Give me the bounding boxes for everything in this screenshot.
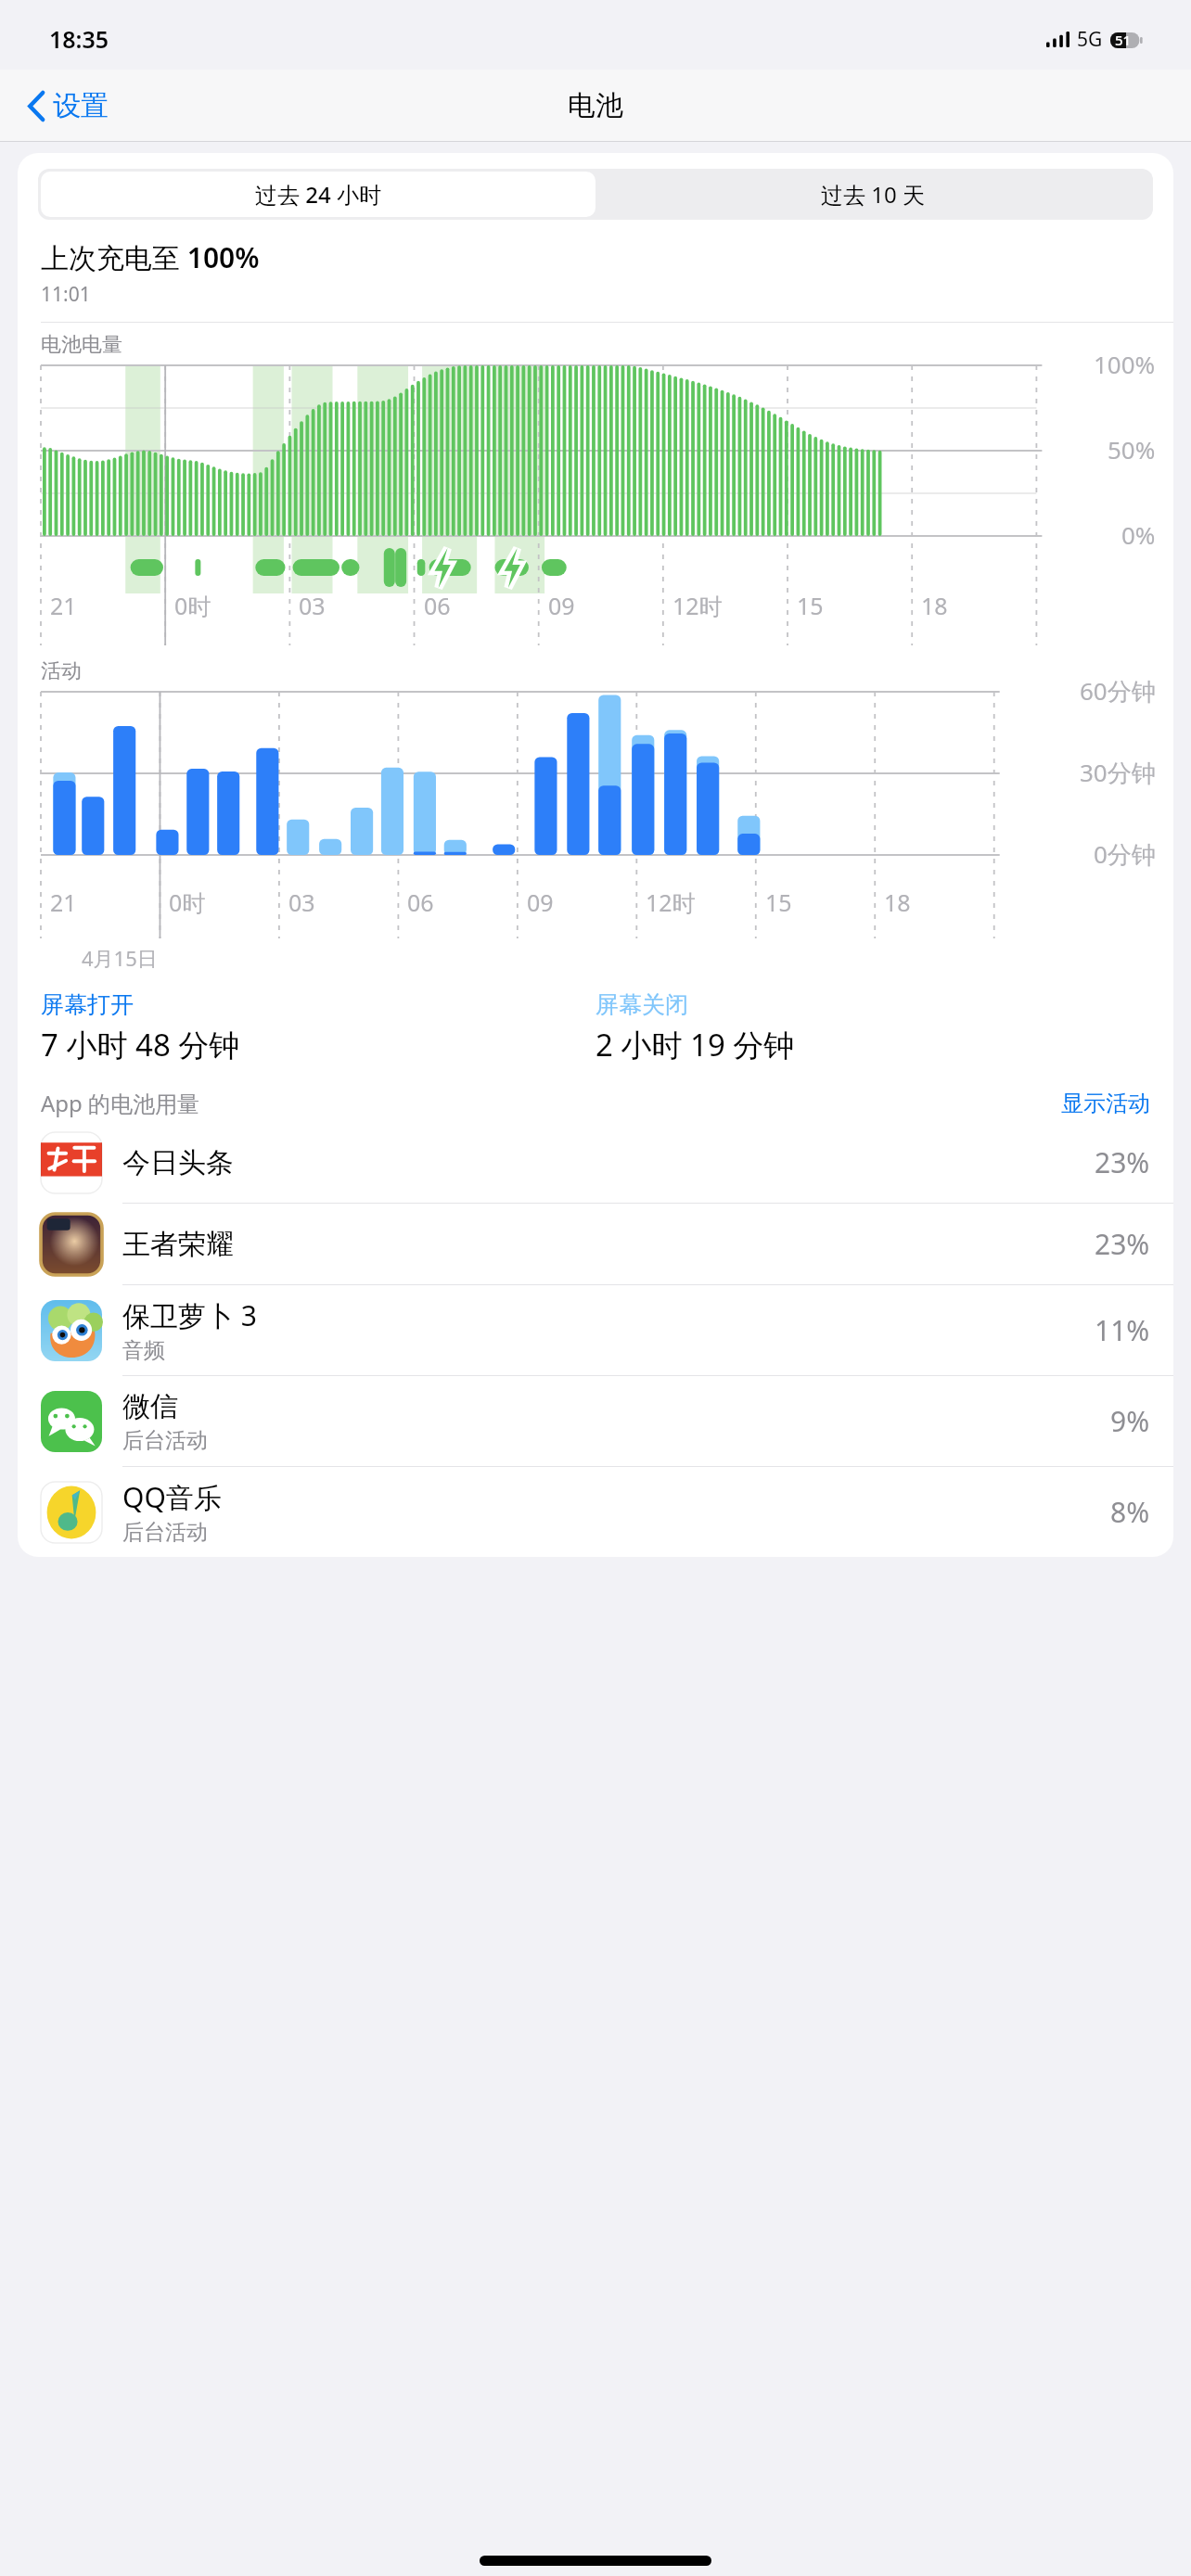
staticText: 21 [50, 886, 77, 918]
staticText: 8% [1110, 1493, 1150, 1531]
staticText: 0分钟 [1094, 837, 1156, 871]
staticText: 03 [299, 590, 326, 621]
staticText: 显示活动 [1061, 1090, 1150, 1117]
staticText: 电池电量 [41, 332, 122, 358]
button[interactable]: 显示活动 [1061, 1090, 1150, 1117]
button[interactable]: 微信 [18, 1376, 1173, 1467]
staticText: 7 小时 48 分钟 [41, 1024, 240, 1065]
staticText: 23% [1095, 1143, 1150, 1181]
button[interactable]: 保卫萝卜 3 [18, 1285, 1173, 1376]
staticText: 21 [50, 590, 77, 621]
staticText: 过去 10 天 [821, 179, 925, 210]
button[interactable]: 王者荣耀 [18, 1204, 1173, 1285]
staticText: 屏幕关闭 [595, 990, 688, 1019]
staticText: 音频 [122, 1337, 165, 1364]
staticText: 过去 24 小时 [255, 179, 381, 210]
staticText: 06 [407, 886, 434, 918]
staticText: 5G [1077, 26, 1103, 53]
staticText: 50% [1108, 433, 1156, 465]
staticText: 保卫萝卜 3 [122, 1296, 257, 1334]
staticText: 11% [1095, 1311, 1150, 1349]
staticText: 18 [921, 590, 948, 621]
staticText: 9% [1110, 1402, 1150, 1440]
staticText: App 的电池用量 [41, 1088, 200, 1118]
staticText: 王者荣耀 [122, 1227, 234, 1262]
button[interactable]: QQ音乐 [18, 1467, 1173, 1557]
staticText: 0% [1121, 518, 1156, 551]
staticText: 后台活动 [122, 1519, 208, 1546]
staticText: 51 [1115, 31, 1132, 49]
staticText: 屏幕打开 [41, 990, 134, 1019]
button[interactable]: 今日头条 [18, 1122, 1173, 1204]
staticText: 03 [288, 886, 315, 918]
staticText: 60分钟 [1080, 674, 1156, 708]
staticText: 09 [527, 886, 554, 918]
staticText: 0时 [169, 886, 206, 918]
staticText: 活动 [41, 658, 82, 684]
staticText: 12时 [672, 590, 723, 621]
button[interactable]: 设置 [20, 81, 116, 131]
staticText: 设置 [53, 88, 109, 123]
staticText: 0时 [174, 590, 211, 621]
button[interactable]: 过去 10 天 [595, 172, 1150, 217]
staticText: 11:01 [41, 281, 91, 308]
staticText: 今日头条 [122, 1145, 234, 1180]
staticText: 后台活动 [122, 1427, 208, 1454]
staticText: 30分钟 [1080, 756, 1156, 789]
staticText: 2 小时 19 分钟 [595, 1024, 795, 1065]
staticText: 电池 [568, 88, 623, 123]
staticText: QQ音乐 [122, 1478, 222, 1516]
staticText: 100% [1094, 348, 1156, 380]
staticText: 12时 [646, 886, 696, 918]
staticText: 06 [424, 590, 451, 621]
button[interactable]: 过去 24 小时 [41, 172, 595, 217]
staticText: 15 [765, 886, 792, 918]
staticText: 23% [1095, 1225, 1150, 1263]
staticText: 微信 [122, 1389, 178, 1424]
staticText: 09 [548, 590, 575, 621]
staticText: 上次充电至 100% [41, 238, 260, 276]
staticText: 15 [797, 590, 824, 621]
staticText: 18 [884, 886, 911, 918]
staticText: 18:35 [49, 23, 109, 55]
staticText: 4月15日 [82, 944, 158, 972]
